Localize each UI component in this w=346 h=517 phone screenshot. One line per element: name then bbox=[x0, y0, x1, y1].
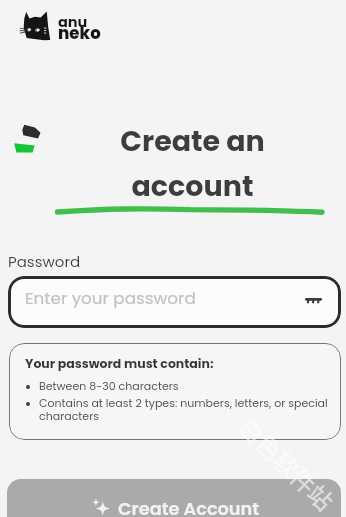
button[interactable]: Create Account bbox=[7, 479, 341, 517]
button[interactable]: anu bbox=[19, 11, 101, 43]
staticText: 白色软件站 bbox=[232, 409, 342, 517]
staticText: Password bbox=[8, 251, 81, 272]
staticText: Enter your password bbox=[25, 286, 196, 310]
staticText: anu bbox=[58, 12, 88, 32]
staticText: Create Account bbox=[118, 496, 260, 517]
button[interactable]: Show password bbox=[296, 284, 330, 318]
button[interactable]: Enter your password bbox=[8, 276, 341, 328]
staticText: Between 8-30 characters bbox=[39, 378, 179, 393]
staticText: neko bbox=[58, 22, 101, 45]
staticText: Contains at least 2 types: numbers, lett… bbox=[39, 395, 331, 424]
staticText: Your password must contain: bbox=[25, 355, 214, 372]
staticText: Create an account bbox=[39, 121, 346, 206]
